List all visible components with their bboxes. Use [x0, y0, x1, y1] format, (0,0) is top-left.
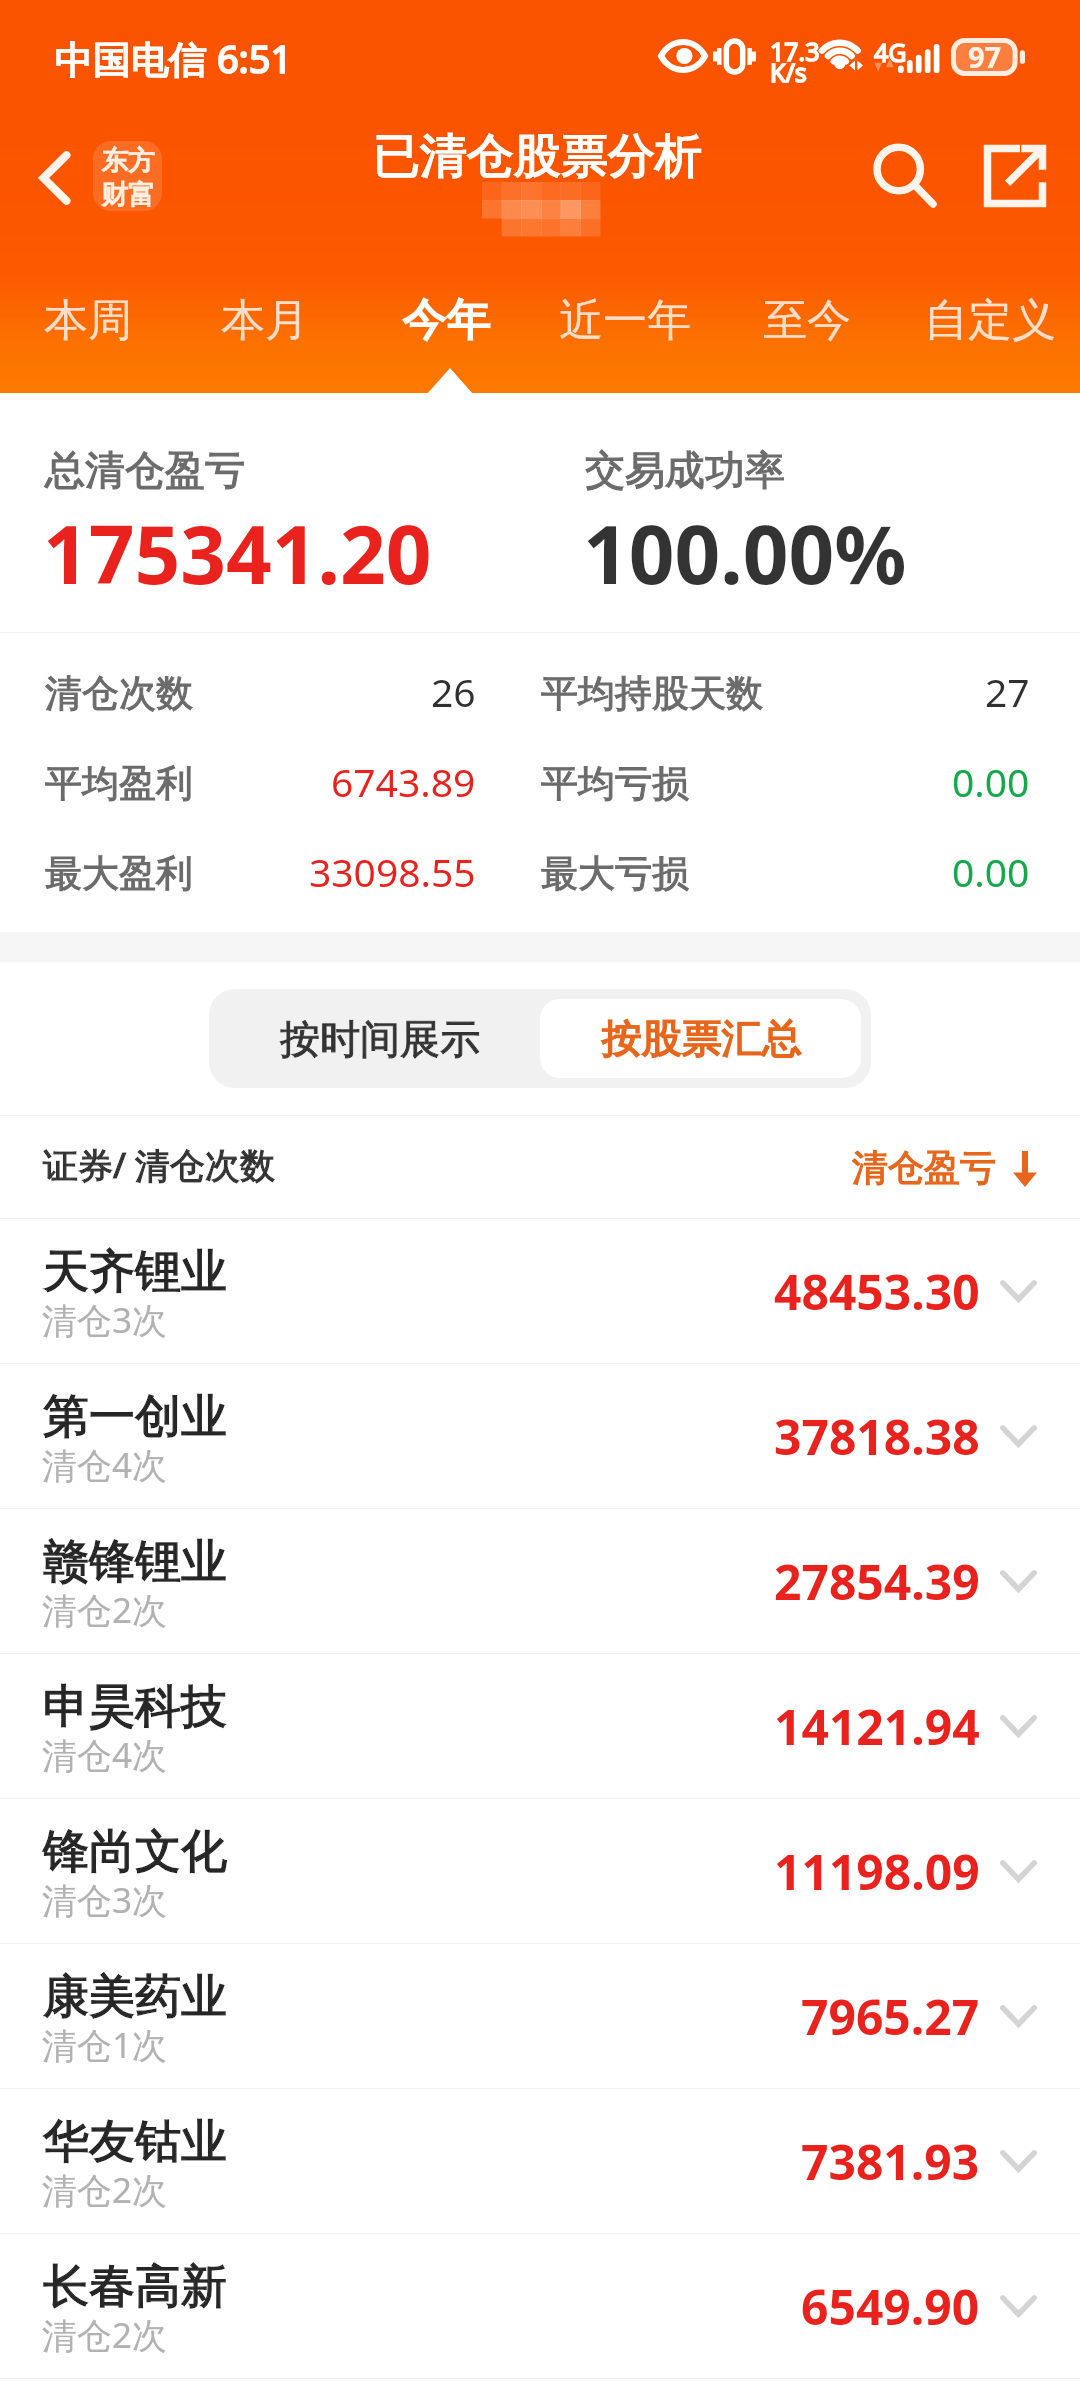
staticText: 华友钴业 — [43, 2113, 227, 2171]
button[interactable]: Back — [9, 126, 101, 230]
staticText: 27 — [985, 665, 1030, 718]
staticText: 最大亏损 — [541, 850, 689, 897]
staticText: 清仓1次 — [42, 2021, 168, 2069]
staticText: 平均亏损 — [541, 760, 689, 807]
staticText: 锋尚文化 — [43, 1823, 227, 1881]
button[interactable]: 今年 — [382, 272, 510, 368]
button[interactable]: 按时间展示 — [219, 999, 540, 1078]
staticText: 清仓盈亏 — [852, 1145, 996, 1190]
staticText: 清仓3次 — [42, 1876, 168, 1924]
staticText: 赣锋锂业 — [43, 1533, 227, 1591]
staticText: 清仓4次 — [42, 1731, 168, 1779]
staticText: 17.3 — [770, 34, 820, 68]
staticText: 100.00% — [583, 498, 907, 607]
staticText: 康美药业 — [43, 1968, 227, 2026]
staticText: 按时间展示 — [280, 1014, 480, 1064]
staticText: 清仓4次 — [42, 1441, 168, 1489]
button[interactable]: 锋尚文化 — [0, 1799, 1080, 1943]
staticText: K/s — [770, 55, 807, 89]
staticText: 平均盈利 — [45, 760, 193, 807]
button[interactable]: 申昊科技 — [0, 1654, 1080, 1798]
staticText: 华友钴业 — [43, 2113, 227, 2171]
staticText: 本月 — [221, 293, 309, 348]
staticText: 证券/ 清仓次数 — [43, 1141, 276, 1189]
button[interactable]: 康美药业 — [0, 1944, 1080, 2088]
button[interactable]: Search — [853, 122, 957, 230]
staticText: 97 — [968, 37, 1002, 76]
staticText: 长春高新 — [43, 2258, 227, 2316]
button[interactable]: East Money — [93, 141, 162, 211]
staticText: 11198.09 — [774, 1839, 980, 1904]
button[interactable]: 本月 — [201, 272, 329, 368]
staticText: 锋尚文化 — [43, 1823, 227, 1881]
button[interactable]: 第一创业 — [0, 1364, 1080, 1508]
staticText: 平均持股天数 — [541, 670, 763, 717]
staticText: 中国电信 6:51 — [55, 32, 293, 84]
staticText: 7965.27 — [801, 1984, 980, 2049]
staticText: 175341.20 — [43, 498, 432, 607]
staticText: 今年 — [402, 293, 490, 348]
staticText: 中国电信 6:51 — [55, 32, 293, 84]
staticText: 平均盈利 — [45, 760, 193, 807]
staticText: 本周 — [44, 293, 132, 348]
staticText: 清仓2次 — [42, 2311, 168, 2359]
button[interactable]: 按股票汇总 — [540, 999, 861, 1078]
staticText: 第一创业 — [43, 1388, 227, 1446]
staticText: 证券/ 清仓次数 — [43, 1141, 276, 1189]
button[interactable]: 自定义 — [902, 272, 1078, 368]
staticText: 总清仓盈亏 — [45, 445, 245, 495]
staticText: 自定义 — [924, 293, 1056, 348]
staticText: 交易成功率 — [585, 445, 785, 495]
staticText: 清仓3次 — [42, 1296, 168, 1344]
button[interactable]: 清仓盈亏 — [852, 1145, 1038, 1190]
staticText: 17.3 — [770, 34, 820, 68]
staticText: 清仓盈亏 — [852, 1145, 996, 1190]
staticText: 7381.93 — [801, 2129, 980, 2194]
button[interactable]: 长春高新 — [0, 2234, 1080, 2378]
button[interactable]: 赣锋锂业 — [0, 1509, 1080, 1653]
staticText: 6549.90 — [801, 2274, 980, 2339]
staticText: 第一创业 — [43, 1388, 227, 1446]
staticText: 4G — [874, 35, 907, 69]
staticText: 申昊科技 — [43, 1678, 227, 1736]
staticText: 26 — [431, 665, 476, 718]
staticText: 按时间展示 — [280, 1014, 480, 1064]
staticText: 天齐锂业 — [43, 1243, 227, 1301]
staticText: 48453.30 — [774, 1259, 980, 1324]
staticText: 天齐锂业 — [43, 1243, 227, 1301]
staticText: 0.00 — [952, 755, 1030, 808]
staticText: 37818.38 — [774, 1404, 980, 1469]
staticText: 4G — [874, 35, 907, 69]
button[interactable]: Share — [963, 122, 1067, 230]
staticText: 最大盈利 — [45, 850, 193, 897]
staticText: 交易成功率 — [585, 445, 785, 495]
staticText: 申昊科技 — [43, 1678, 227, 1736]
staticText: 14121.94 — [774, 1694, 980, 1759]
staticText: 已清仓股票分析 — [373, 127, 702, 186]
staticText: 33098.55 — [309, 845, 476, 898]
staticText: 平均亏损 — [541, 760, 689, 807]
staticText: 清仓2次 — [42, 2166, 168, 2214]
staticText: 至今 — [763, 293, 851, 348]
staticText: 平均持股天数 — [541, 670, 763, 717]
staticText: 6743.89 — [331, 755, 476, 808]
button[interactable]: 华友钴业 — [0, 2089, 1080, 2233]
staticText: 财富 — [101, 178, 155, 211]
button[interactable]: 近一年 — [537, 272, 713, 368]
staticText: 最大盈利 — [45, 850, 193, 897]
staticText: 按股票汇总 — [601, 1014, 801, 1064]
staticText: 已清仓股票分析 — [373, 127, 702, 186]
staticText: K/s — [770, 55, 807, 89]
staticText: 最大亏损 — [541, 850, 689, 897]
button[interactable]: 至今 — [743, 272, 871, 368]
staticText: 康美药业 — [43, 1968, 227, 2026]
staticText: 总清仓盈亏 — [45, 445, 245, 495]
staticText: 清仓次数 — [45, 670, 193, 717]
staticText: 近一年 — [559, 293, 691, 348]
staticText: 27854.39 — [774, 1549, 980, 1614]
staticText: 清仓次数 — [45, 670, 193, 717]
staticText: 清仓2次 — [42, 1586, 168, 1634]
button[interactable]: 本周 — [24, 272, 152, 368]
staticText: 赣锋锂业 — [43, 1533, 227, 1591]
button[interactable]: 天齐锂业 — [0, 1219, 1080, 1363]
